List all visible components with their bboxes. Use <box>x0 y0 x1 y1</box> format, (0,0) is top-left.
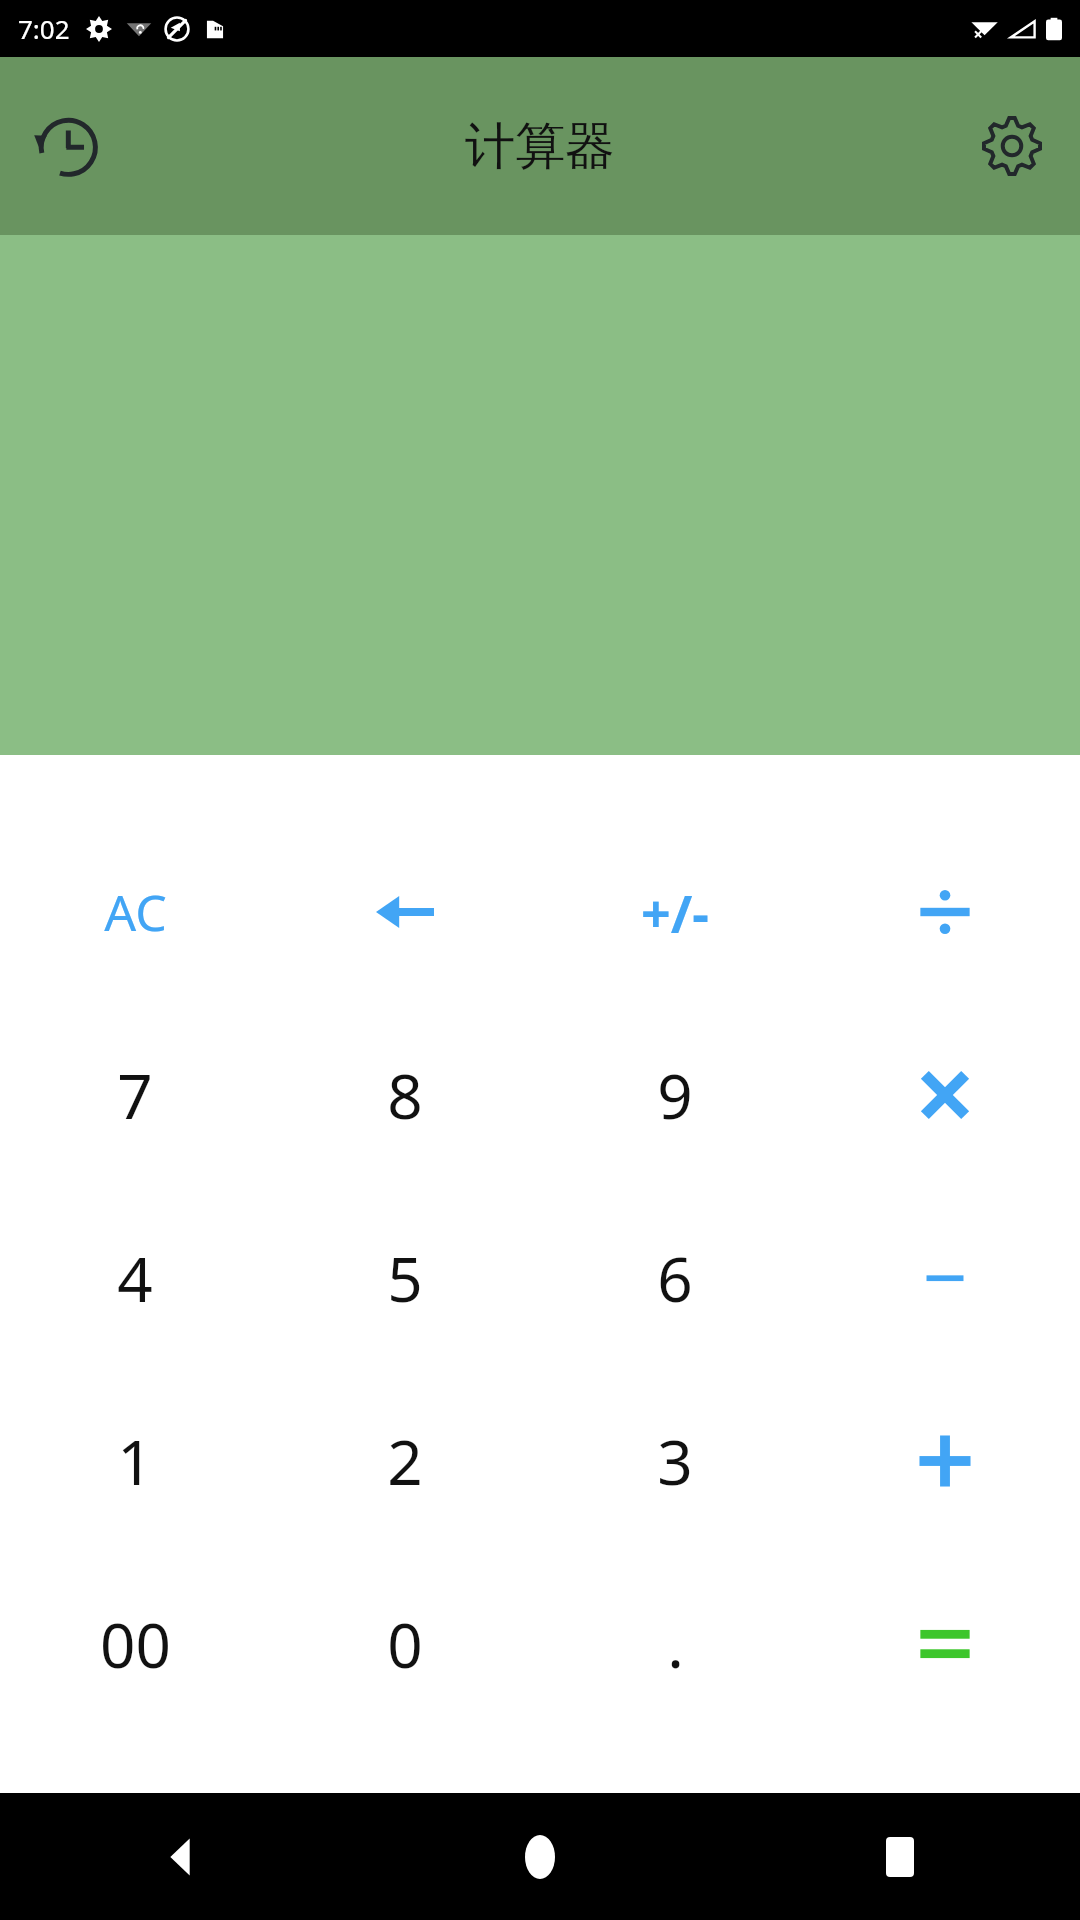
button[interactable]: Multiply <box>810 1003 1080 1186</box>
staticText: 7:02 <box>18 11 70 46</box>
button[interactable]: Equals <box>810 1552 1080 1735</box>
button[interactable]: 7 <box>0 1003 270 1186</box>
button[interactable]: 9 <box>540 1003 810 1186</box>
button[interactable]: Add <box>810 1369 1080 1552</box>
button[interactable]: 1 <box>0 1369 270 1552</box>
staticText: 4 <box>117 1236 153 1320</box>
button[interactable]: +/- <box>540 821 810 1003</box>
button[interactable]: Back <box>0 1793 360 1920</box>
staticText: +/- <box>641 877 709 948</box>
button[interactable]: 6 <box>540 1186 810 1369</box>
button[interactable]: 3 <box>540 1369 810 1552</box>
button[interactable]: Recent apps <box>720 1793 1080 1920</box>
button[interactable]: 2 <box>270 1369 540 1552</box>
staticText: 2 <box>387 1419 423 1503</box>
button[interactable]: 5 <box>270 1186 540 1369</box>
staticText: 0 <box>387 1602 423 1686</box>
button[interactable]: 00 <box>0 1552 270 1735</box>
button[interactable]: AC <box>0 821 270 1003</box>
button[interactable]: 0 <box>270 1552 540 1735</box>
button[interactable]: Backspace <box>270 821 540 1003</box>
button[interactable]: . <box>540 1552 810 1735</box>
staticText: 6 <box>657 1236 693 1320</box>
staticText: AC <box>104 878 167 946</box>
staticText: 9 <box>657 1053 693 1137</box>
staticText: . <box>667 1602 684 1686</box>
button[interactable]: Home <box>360 1793 720 1920</box>
staticText: 3 <box>657 1419 693 1503</box>
staticText: 00 <box>100 1602 171 1686</box>
button[interactable]: Settings <box>962 96 1062 196</box>
button[interactable]: 8 <box>270 1003 540 1186</box>
staticText: 计算器 <box>465 115 615 178</box>
button[interactable]: Divide <box>810 821 1080 1003</box>
button[interactable]: History <box>14 93 120 199</box>
button[interactable]: 4 <box>0 1186 270 1369</box>
staticText: 8 <box>387 1053 423 1137</box>
button[interactable]: Subtract <box>810 1186 1080 1369</box>
staticText: 1 <box>117 1419 153 1503</box>
staticText: 7 <box>117 1053 153 1137</box>
staticText: 5 <box>387 1236 423 1320</box>
